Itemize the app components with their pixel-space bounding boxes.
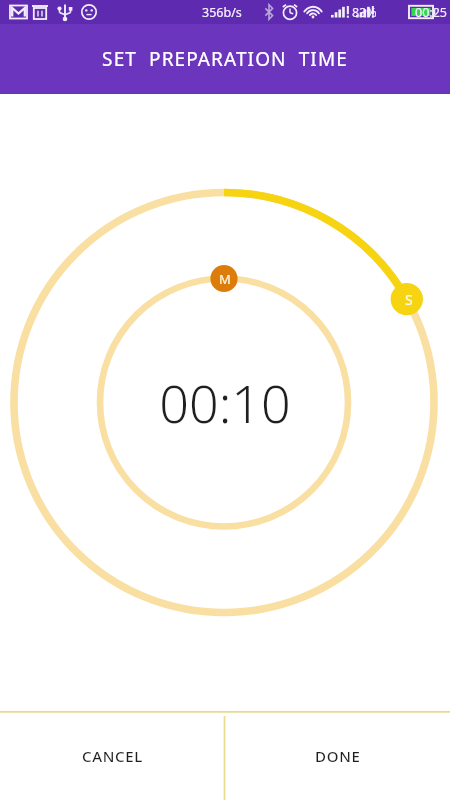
button[interactable]: CANCEL <box>0 711 225 800</box>
staticText: SET PREPARATION TIME <box>102 46 348 72</box>
button[interactable]: DONE <box>225 711 450 800</box>
staticText: M <box>219 270 231 288</box>
staticText: 356b/s <box>202 4 242 21</box>
staticText: 00:10 <box>159 367 291 438</box>
staticText: CANCEL <box>82 746 144 766</box>
staticText: DONE <box>315 746 361 766</box>
button[interactable]: Seconds handle <box>392 283 425 316</box>
staticText: S <box>405 290 413 309</box>
staticText: 83% <box>352 4 377 21</box>
staticText: 00:25 <box>415 4 447 21</box>
button[interactable]: Minutes handle <box>211 265 239 293</box>
